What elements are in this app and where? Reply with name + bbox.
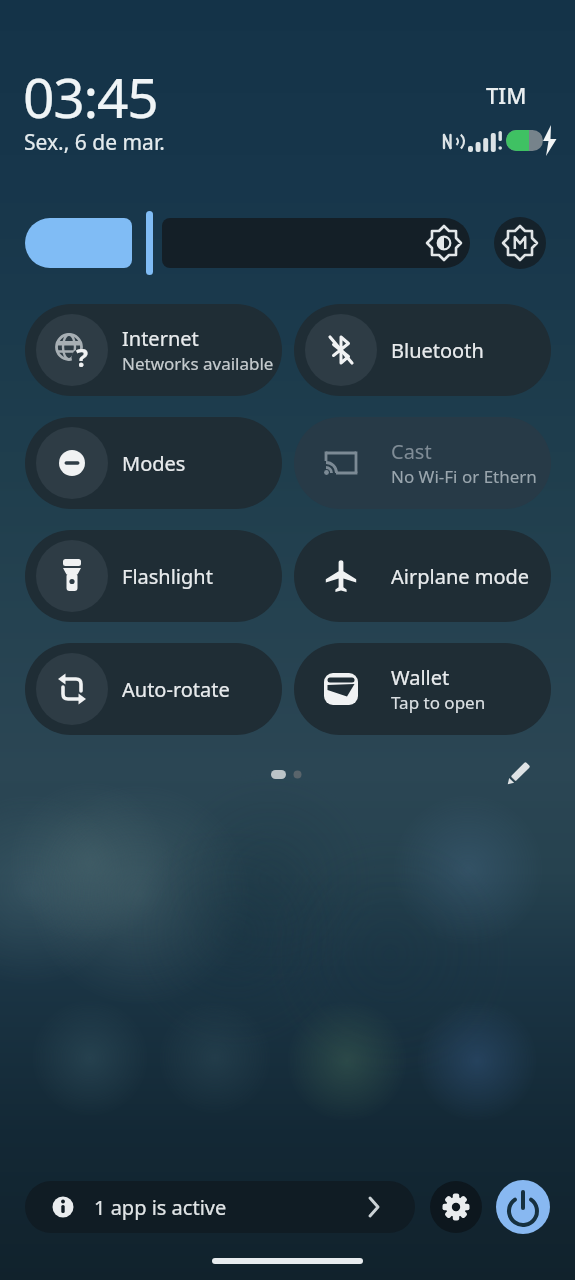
- staticText: Airplane mode: [391, 563, 530, 590]
- button[interactable]: Airplane mode: [294, 530, 551, 622]
- staticText: Sex., 6 de mar.: [24, 128, 165, 157]
- button[interactable]: Auto-rotate: [25, 643, 282, 735]
- button[interactable]: [25, 218, 132, 268]
- staticText: Modes: [122, 450, 186, 477]
- button[interactable]: [162, 218, 470, 268]
- button[interactable]: 1 app is active: [25, 1181, 415, 1233]
- button[interactable]: Bluetooth: [294, 304, 551, 396]
- staticText: TIM: [486, 80, 527, 110]
- button[interactable]: [430, 1181, 482, 1233]
- staticText: Tap to open: [391, 691, 486, 714]
- staticText: Wallet: [391, 664, 450, 691]
- button[interactable]: Cast: [294, 417, 551, 509]
- button[interactable]: Flashlight: [25, 530, 282, 622]
- button[interactable]: [494, 217, 546, 269]
- staticText: Bluetooth: [391, 337, 484, 364]
- button[interactable]: Modes: [25, 417, 282, 509]
- staticText: Internet: [122, 325, 199, 352]
- button[interactable]: ?: [25, 304, 282, 396]
- staticText: Flashlight: [122, 563, 213, 590]
- staticText: 03:45: [23, 59, 158, 134]
- staticText: Cast: [391, 438, 432, 465]
- button[interactable]: Wallet: [294, 643, 551, 735]
- staticText: No Wi-Fi or Ethern: [391, 465, 537, 488]
- staticText: ?: [76, 340, 88, 374]
- staticText: 1 app is active: [94, 1194, 227, 1221]
- staticText: Auto-rotate: [122, 676, 230, 703]
- button[interactable]: [496, 1180, 550, 1234]
- staticText: Networks available: [122, 352, 274, 375]
